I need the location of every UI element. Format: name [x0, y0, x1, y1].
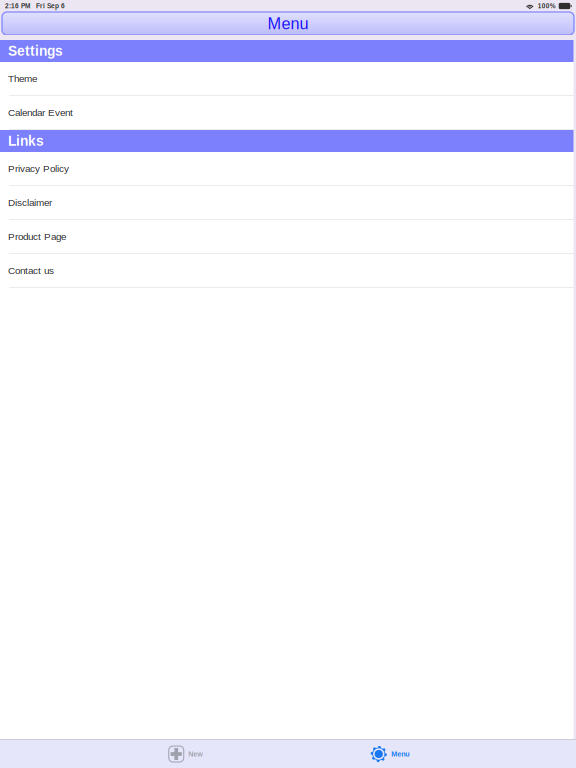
staticText: Calendar Event: [8, 107, 73, 118]
staticText: Privacy Policy: [8, 163, 69, 174]
staticText: 100%: [538, 2, 556, 10]
button[interactable]: Contact us: [0, 254, 576, 288]
staticText: Contact us: [8, 265, 54, 276]
staticText: 2:16 PM: [5, 2, 30, 10]
staticText: New: [188, 750, 203, 758]
button[interactable]: Theme: [0, 62, 576, 96]
button[interactable]: New: [106, 740, 266, 768]
button[interactable]: Disclaimer: [0, 186, 576, 220]
button[interactable]: Calendar Event: [0, 96, 576, 130]
staticText: Theme: [8, 73, 37, 84]
staticText: Menu: [391, 750, 409, 758]
staticText: Menu: [267, 14, 308, 33]
staticText: Settings: [8, 43, 63, 59]
staticText: Product Page: [8, 231, 66, 242]
button[interactable]: Menu: [310, 740, 470, 768]
button[interactable]: Privacy Policy: [0, 152, 576, 186]
staticText: Fri Sep 6: [36, 2, 65, 10]
button[interactable]: Product Page: [0, 220, 576, 254]
staticText: Links: [8, 133, 44, 149]
staticText: Disclaimer: [8, 197, 52, 208]
